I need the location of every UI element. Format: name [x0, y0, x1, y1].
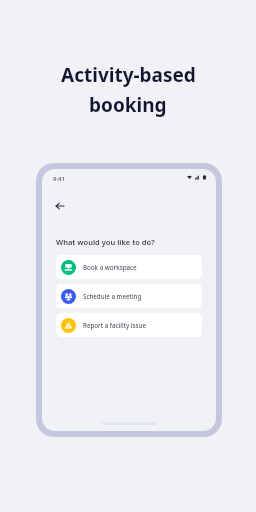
- staticText: booking: [89, 92, 167, 118]
- staticText: Report a facility issue: [83, 321, 146, 329]
- staticText: 9:41: [53, 175, 65, 183]
- staticText: Schedule a meeting: [83, 292, 142, 300]
- button[interactable]: Report a facility issue: [56, 313, 202, 337]
- staticText: What would you like to do?: [56, 237, 155, 247]
- staticText: Book a workspace: [83, 263, 137, 271]
- button[interactable]: Book a workspace: [56, 255, 202, 279]
- staticText: Activity-based: [61, 62, 196, 88]
- button[interactable]: Schedule a meeting: [56, 284, 202, 308]
- button[interactable]: Back: [51, 197, 69, 215]
